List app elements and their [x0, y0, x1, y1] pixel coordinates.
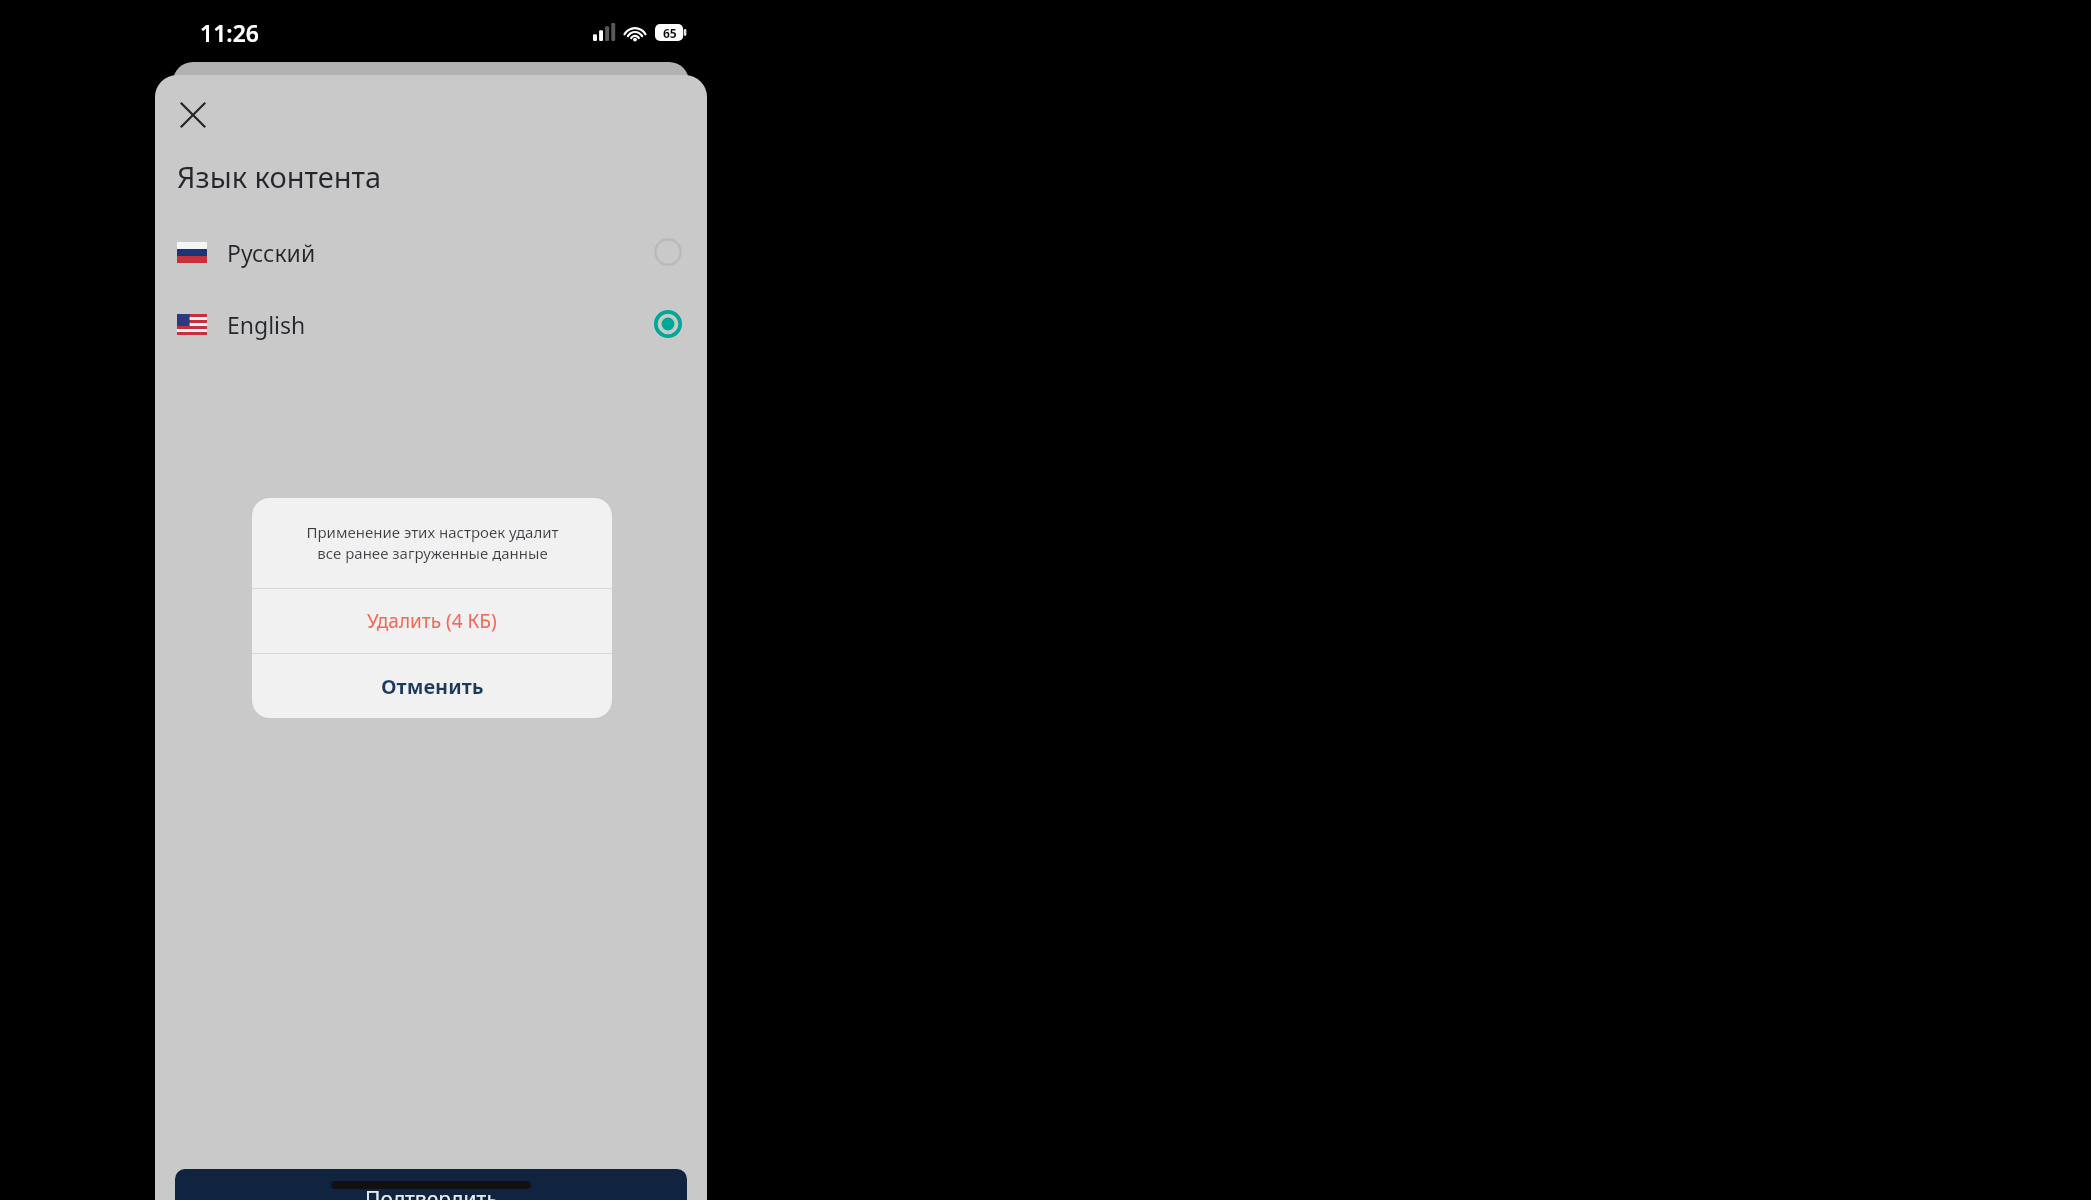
staticText: Русский	[227, 237, 316, 268]
staticText: English	[227, 309, 306, 340]
staticText: 65	[663, 25, 677, 41]
button[interactable]: Not selected	[651, 235, 685, 269]
button[interactable]: Подтвердить	[175, 1169, 687, 1200]
button[interactable]: Русский	[155, 224, 707, 280]
button[interactable]: Отменить	[252, 654, 612, 718]
button[interactable]: Selected	[651, 307, 685, 341]
button[interactable]: Удалить (4 КБ)	[252, 589, 612, 653]
staticText: Удалить (4 КБ)	[367, 608, 497, 634]
button[interactable]: Close	[165, 87, 221, 143]
staticText: Применение этих настроек удалит все ране…	[306, 522, 559, 564]
staticText: Отменить	[381, 673, 484, 700]
staticText: 11:26	[200, 17, 259, 48]
staticText: Подтвердить	[365, 1185, 498, 1200]
button[interactable]: English	[155, 296, 707, 352]
staticText: Язык контента	[177, 157, 382, 196]
